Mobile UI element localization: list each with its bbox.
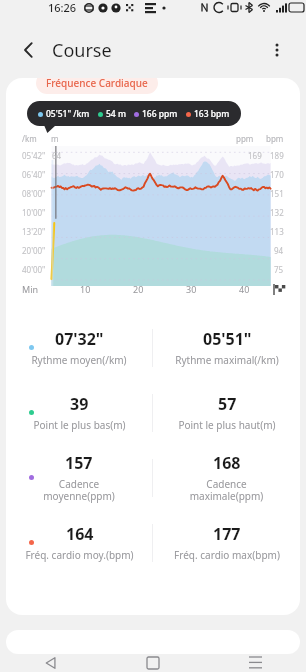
staticText: 163 bpm bbox=[194, 108, 230, 120]
staticText: Cadence moyenne(ppm) bbox=[24, 477, 134, 503]
button[interactable]: Home bbox=[102, 654, 204, 672]
staticText: 189 bbox=[270, 150, 284, 161]
button[interactable]: 05'51" /km bbox=[27, 101, 241, 126]
staticText: Course bbox=[52, 38, 112, 63]
staticText: 113 bbox=[270, 226, 284, 237]
staticText: Fréq. cardio moy.(bpm) bbox=[25, 548, 134, 562]
button[interactable]: 157 bbox=[6, 445, 152, 510]
staticText: 75 bbox=[274, 264, 284, 275]
button[interactable]: More options bbox=[260, 33, 294, 67]
staticText: 05'42" bbox=[22, 150, 46, 161]
staticText: bpm bbox=[266, 133, 284, 144]
staticText: 10 bbox=[80, 283, 91, 295]
staticText: 54 m bbox=[106, 108, 126, 120]
staticText: 94 bbox=[274, 245, 284, 256]
staticText: /km bbox=[22, 133, 37, 144]
staticText: Rythme maximal(/km) bbox=[175, 353, 279, 367]
button[interactable]: 164 bbox=[6, 510, 152, 575]
staticText: 132 bbox=[270, 207, 284, 218]
button[interactable]: Fréquence Cardiaque bbox=[36, 78, 158, 94]
staticText: 40'00" bbox=[22, 264, 46, 275]
staticText: 157 bbox=[65, 452, 93, 474]
staticText: m bbox=[51, 133, 59, 144]
button[interactable]: Back bbox=[0, 654, 102, 672]
staticText: 64 bbox=[52, 150, 62, 161]
staticText: 07'32" bbox=[55, 328, 104, 350]
staticText: 20'00" bbox=[22, 245, 46, 256]
staticText: Fréquence Cardiaque bbox=[46, 78, 148, 90]
staticText: 168 bbox=[213, 452, 241, 474]
staticText: Rythme moyen(/km) bbox=[31, 353, 127, 367]
staticText: Cadence maximale(ppm) bbox=[171, 477, 282, 503]
staticText: Point le plus bas(m) bbox=[33, 418, 126, 432]
staticText: 05'51" /km bbox=[46, 108, 90, 120]
staticText: 57 bbox=[218, 393, 237, 415]
staticText: 16:26 bbox=[48, 0, 77, 15]
staticText: Fréq. cardio max(bpm) bbox=[174, 548, 280, 562]
button[interactable]: Recent apps bbox=[204, 654, 306, 672]
staticText: 166 ppm bbox=[142, 108, 178, 120]
button[interactable]: 39 bbox=[6, 380, 152, 445]
staticText: Point le plus haut(m) bbox=[178, 418, 276, 432]
staticText: 13'20" bbox=[22, 226, 46, 237]
button[interactable]: 57 bbox=[153, 380, 300, 445]
staticText: 06'40" bbox=[22, 169, 46, 180]
button[interactable]: Back bbox=[12, 33, 46, 67]
staticText: 177 bbox=[213, 523, 241, 545]
staticText: 40 bbox=[239, 283, 250, 295]
staticText: 164 bbox=[66, 523, 94, 545]
staticText: 30 bbox=[186, 283, 197, 295]
staticText: 05'51" bbox=[203, 328, 252, 350]
staticText: 169 bbox=[248, 150, 262, 161]
staticText: 39 bbox=[70, 393, 89, 415]
button[interactable]: 05'51" bbox=[153, 315, 300, 380]
staticText: ppm bbox=[236, 133, 254, 144]
staticText: 08'00" bbox=[22, 188, 46, 199]
staticText: 20 bbox=[133, 283, 144, 295]
button[interactable]: 07'32" bbox=[6, 315, 152, 380]
staticText: 10'00" bbox=[22, 207, 46, 218]
button[interactable]: 177 bbox=[153, 510, 300, 575]
staticText: Min bbox=[22, 283, 39, 295]
staticText: 170 bbox=[270, 169, 284, 180]
staticText: 151 bbox=[270, 188, 284, 199]
button[interactable]: 168 bbox=[153, 445, 300, 510]
